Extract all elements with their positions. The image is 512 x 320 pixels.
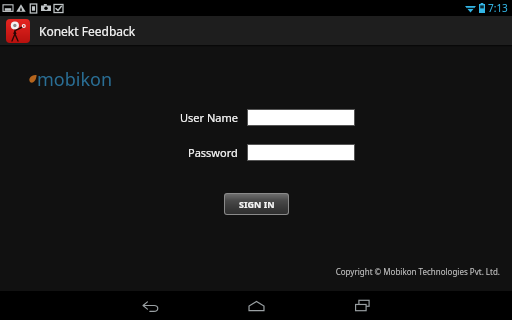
staticText: mobikon (37, 67, 113, 92)
staticText: Konekt Feedback (39, 23, 136, 39)
staticText: 7:13 (488, 1, 508, 15)
staticText: Password (188, 145, 238, 160)
button[interactable]: Home (236, 291, 276, 320)
button[interactable]: Back (130, 291, 170, 320)
button[interactable]: SIGN IN (225, 194, 288, 214)
button[interactable]: Recent apps (342, 291, 382, 320)
staticText: SIGN IN (239, 198, 275, 210)
staticText: Copyright © Mobikon Technologies Pvt. Lt… (335, 266, 500, 277)
staticText: User Name (180, 110, 238, 125)
